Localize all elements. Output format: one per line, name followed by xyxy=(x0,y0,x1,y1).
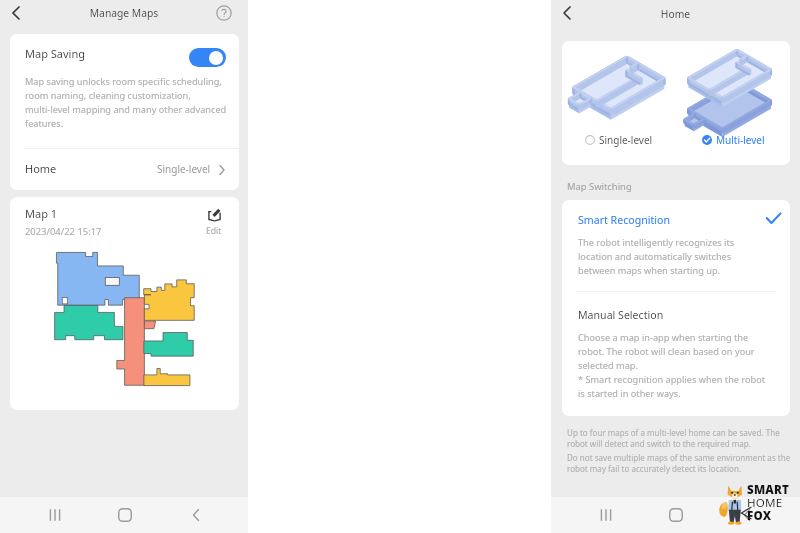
staticText: Home xyxy=(25,161,57,176)
staticText: Manage Maps xyxy=(0,6,248,20)
staticText: Multi-level xyxy=(716,133,765,147)
staticText: Up to four maps of a multi-level home ca… xyxy=(567,427,780,449)
button[interactable]: Back xyxy=(730,497,763,533)
button[interactable]: Map Saving xyxy=(10,34,239,74)
button[interactable]: Multi-level xyxy=(676,129,790,151)
button[interactable]: Back xyxy=(4,1,28,25)
button[interactable]: Recent apps xyxy=(589,497,622,533)
button[interactable]: Recent apps xyxy=(38,497,71,533)
staticText: Map 1 xyxy=(25,206,58,221)
button[interactable]: Smart Recognition xyxy=(562,200,790,291)
button[interactable]: Edit xyxy=(198,205,230,237)
button[interactable]: Home xyxy=(659,497,692,533)
staticText: Map Saving xyxy=(25,46,85,61)
staticText: Edit xyxy=(206,225,222,237)
staticText: Map Switching xyxy=(567,180,632,193)
staticText: Map saving unlocks room specific schedul… xyxy=(25,75,235,130)
staticText: 2023/04/22 15:17 xyxy=(25,225,102,238)
button[interactable]: Manual Selection xyxy=(562,292,790,416)
staticText: Single-level xyxy=(157,162,211,176)
button[interactable]: Back xyxy=(179,497,212,533)
staticText: Choose a map in-app when starting the ro… xyxy=(578,331,766,400)
button[interactable]: Home xyxy=(10,149,239,190)
button[interactable]: Help xyxy=(212,1,236,25)
staticText: Do not save multiple maps of the same en… xyxy=(567,452,791,474)
staticText: HOME xyxy=(747,495,783,511)
staticText: Manual Selection xyxy=(578,308,664,322)
staticText: FOX xyxy=(747,508,772,524)
button[interactable]: Home xyxy=(108,497,141,533)
staticText: SMART xyxy=(747,482,790,498)
staticText: The robot intelligently recognizes its l… xyxy=(578,236,735,277)
staticText: Smart Recognition xyxy=(578,213,670,227)
staticText: Home xyxy=(551,7,800,21)
button[interactable]: Single-level xyxy=(562,129,676,151)
staticText: Single-level xyxy=(599,133,653,147)
button[interactable]: Back xyxy=(556,2,578,24)
